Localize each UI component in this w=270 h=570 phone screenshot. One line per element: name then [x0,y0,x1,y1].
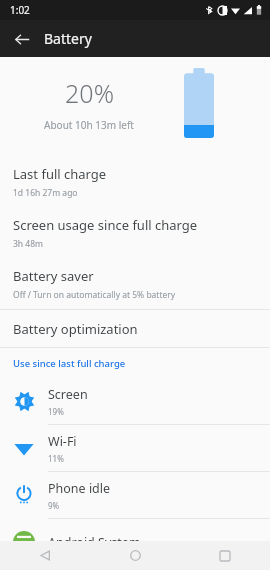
button[interactable]: Recent apps [180,541,270,570]
button[interactable]: Screen [0,378,270,424]
button[interactable]: Android System [0,519,270,565]
staticText: 1:02 [10,3,30,17]
staticText: Off / Turn on automatically at 5% batter… [13,289,176,301]
staticText: Last full charge [13,165,107,183]
staticText: Screen [48,386,88,403]
staticText: 19% [48,406,64,417]
button[interactable]: Back [0,541,90,570]
staticText: Phone idle [48,480,111,497]
staticText: 11% [48,453,64,464]
staticText: Screen usage since full charge [13,216,198,234]
staticText: 1d 16h 27m ago [13,187,78,199]
staticText: Use since last full charge [13,357,126,370]
staticText: About 10h 13m left [44,118,134,132]
button[interactable]: Back [8,25,36,53]
button[interactable]: Last full charge [0,156,270,207]
button[interactable]: Screen usage since full charge [0,207,270,258]
staticText: Battery saver [13,267,94,285]
button[interactable]: Battery optimization [0,310,270,347]
button[interactable]: Battery saver [0,258,270,309]
staticText: Battery [44,29,92,48]
button[interactable]: Home [90,541,180,570]
button[interactable]: Phone idle [0,472,270,518]
button[interactable]: Wi-Fi [0,425,270,471]
staticText: 9% [48,500,60,511]
staticText: Battery optimization [13,320,138,338]
staticText: 20% [65,76,114,110]
staticText: 3h 48m [13,238,43,250]
staticText: Android System [48,534,141,551]
staticText: Wi-Fi [48,433,77,450]
